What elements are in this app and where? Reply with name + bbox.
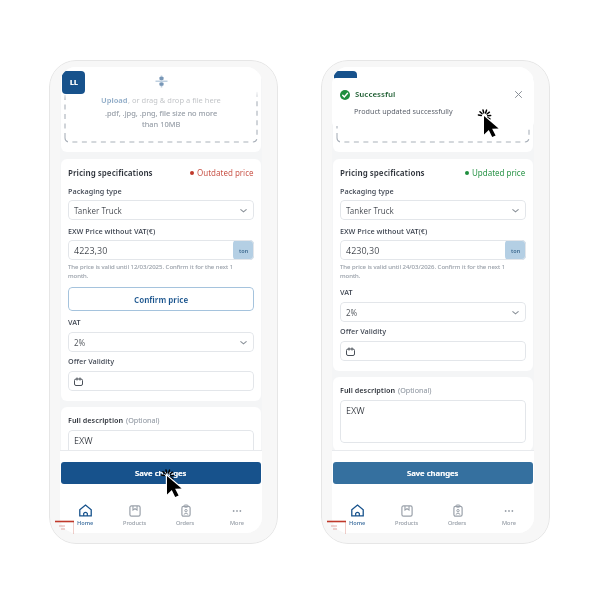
button[interactable]: Save changes — [61, 462, 261, 484]
button[interactable]: LL — [62, 71, 85, 94]
staticText: than 10MB — [142, 119, 181, 129]
staticText: ton — [511, 247, 521, 254]
staticText: Full description — [340, 385, 398, 395]
button[interactable]: Products — [110, 498, 160, 533]
button[interactable]: Orders — [432, 498, 483, 533]
staticText: Tanker Truck — [74, 205, 122, 216]
staticText: Full description — [68, 415, 126, 425]
staticText: Save changes — [407, 468, 459, 479]
staticText: Offer Validity — [68, 356, 115, 366]
button[interactable]: Close — [513, 89, 524, 100]
button[interactable]: Home — [332, 498, 382, 533]
staticText: VAT — [68, 317, 81, 327]
staticText: .pdf, .jpg, .png, file size no more — [105, 108, 218, 118]
staticText: VAT — [340, 287, 353, 297]
staticText: Updated price — [472, 167, 526, 178]
staticText: The price is valid until 12/03/2025. Con… — [68, 263, 234, 280]
staticText: The price is valid until 24/03/2026. Con… — [340, 263, 506, 280]
staticText: More — [230, 519, 244, 527]
button[interactable]: Confirm price — [68, 287, 254, 311]
staticText: Orders — [176, 519, 195, 527]
button[interactable]: Products — [382, 498, 432, 533]
staticText: Packaging type — [340, 186, 394, 196]
staticText: 2% — [74, 337, 86, 348]
staticText: Home — [349, 519, 366, 527]
button[interactable]: Tanker Truck — [340, 200, 526, 220]
staticText: More — [502, 519, 516, 527]
staticText: LL — [70, 78, 78, 88]
button[interactable]: Tanker Truck — [68, 200, 254, 220]
staticText: Tanker Truck — [346, 205, 394, 216]
staticText: EXW Price without VAT(€) — [340, 226, 428, 236]
button[interactable] — [68, 371, 254, 391]
staticText: Confirm price — [134, 294, 189, 305]
staticText: 4230,30 — [346, 244, 380, 256]
staticText: Outdated price — [197, 167, 254, 178]
staticText: (Optional) — [126, 415, 160, 425]
staticText: Pricing specifications — [68, 167, 153, 178]
staticText: , or drag & drop a file here — [128, 95, 221, 105]
staticText: Upload — [101, 95, 128, 105]
button[interactable]: Save changes — [333, 462, 533, 484]
staticText: Products — [123, 519, 147, 527]
staticText: Offer Validity — [340, 326, 387, 336]
button[interactable]: LL — [334, 71, 357, 94]
button[interactable]: More — [211, 498, 262, 533]
staticText: Pricing specifications — [340, 167, 425, 178]
button[interactable]: Orders — [160, 498, 211, 533]
staticText: ton — [239, 247, 249, 254]
button[interactable]: 2% — [340, 302, 526, 322]
button[interactable]: Home — [60, 498, 110, 533]
staticText: Save changes — [135, 468, 187, 479]
staticText: EXW — [74, 434, 93, 446]
staticText: (Optional) — [398, 385, 432, 395]
staticText: Home — [77, 519, 94, 527]
staticText: Product updated successfully — [354, 106, 453, 116]
staticText: Packaging type — [68, 186, 122, 196]
button[interactable]: 2% — [68, 332, 254, 352]
staticText: EXW Price without VAT(€) — [68, 226, 156, 236]
button[interactable]: More — [483, 498, 534, 533]
staticText: Orders — [448, 519, 467, 527]
staticText: Products — [395, 519, 419, 527]
button[interactable] — [340, 341, 526, 361]
staticText: 4223,30 — [74, 244, 108, 256]
staticText: EXW — [346, 404, 365, 416]
staticText: Successful — [355, 89, 396, 100]
staticText: 2% — [346, 307, 358, 318]
